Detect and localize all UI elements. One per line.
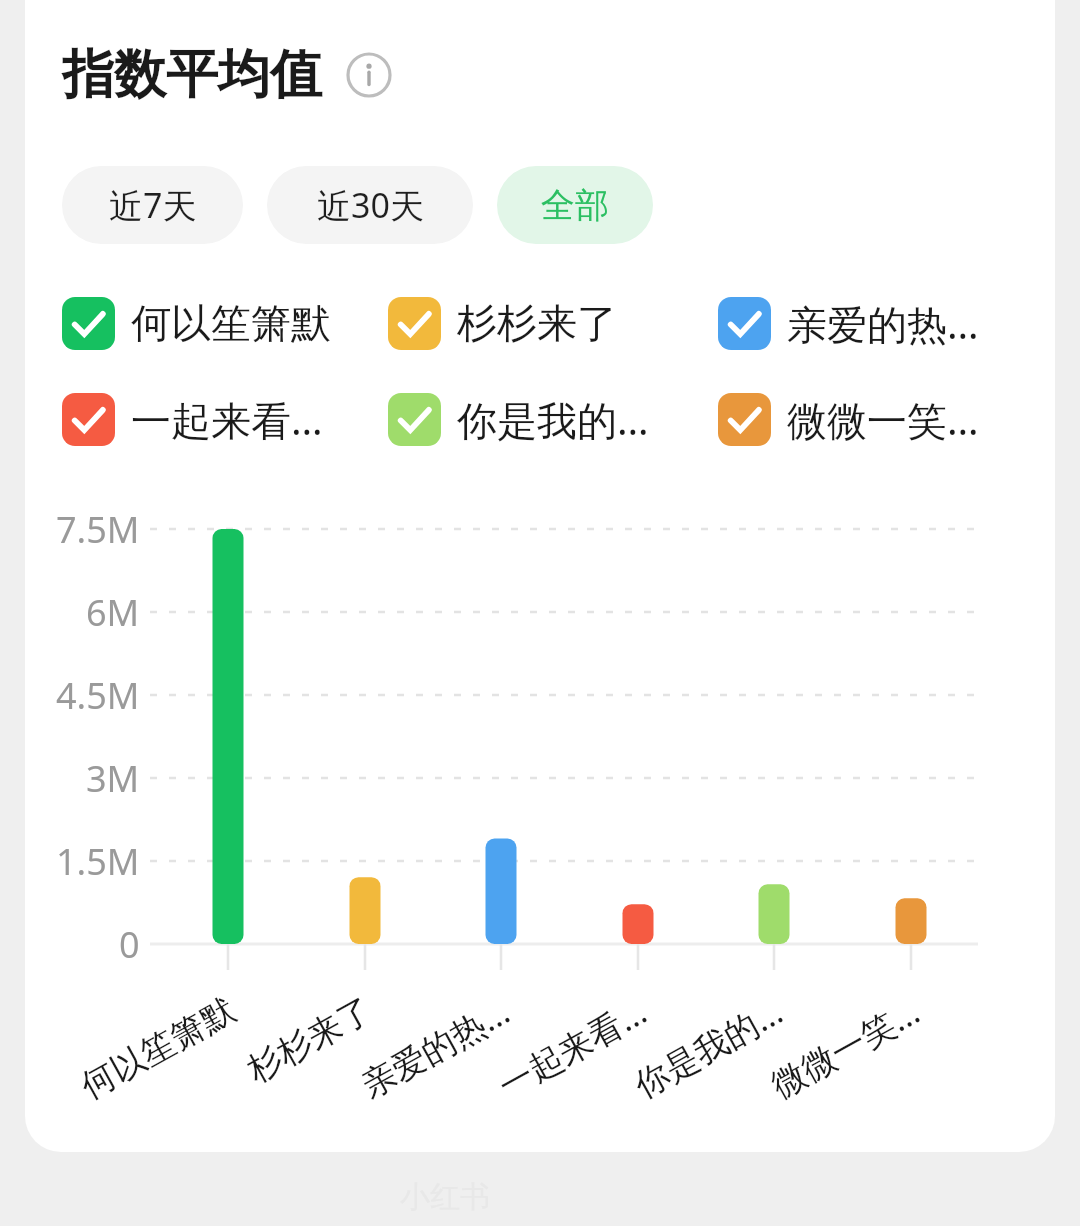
staticText: 杉杉来了 xyxy=(457,298,617,348)
button[interactable]: 一起来看… xyxy=(62,388,323,450)
button[interactable]: 近7天 xyxy=(62,166,243,244)
staticText: 全部 xyxy=(541,184,609,227)
button[interactable]: 近30天 xyxy=(267,166,473,244)
button[interactable]: 微微一笑… xyxy=(718,388,979,450)
button[interactable]: 何以笙箫默 xyxy=(62,292,331,354)
button[interactable]: 你是我的… xyxy=(388,388,649,450)
button[interactable]: 全部 xyxy=(497,166,653,244)
staticText: 近7天 xyxy=(109,182,197,228)
staticText: 近30天 xyxy=(317,182,424,228)
button[interactable]: Info xyxy=(346,52,392,98)
staticText: 指数平均值 xyxy=(62,42,322,108)
button[interactable]: 亲爱的热… xyxy=(718,292,979,354)
staticText: 微微一笑… xyxy=(787,392,979,447)
staticText: 亲爱的热… xyxy=(787,296,979,351)
staticText: 何以笙箫默 xyxy=(131,298,331,348)
button[interactable]: 杉杉来了 xyxy=(388,292,617,354)
staticText: 你是我的… xyxy=(457,392,649,447)
staticText: 一起来看… xyxy=(131,392,323,447)
